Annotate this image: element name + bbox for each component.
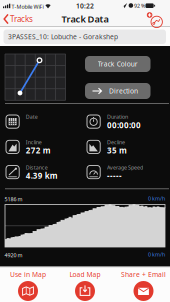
staticText: Direction (109, 87, 138, 95)
button[interactable]: Share + Email (116, 268, 170, 302)
staticText: 0 km/h (148, 195, 165, 202)
staticText: Track Colour (98, 60, 138, 68)
staticText: 35 m (107, 145, 127, 156)
staticText: Average Speed (107, 164, 143, 171)
staticText: Tracks (10, 14, 33, 24)
staticText: Load Map (69, 270, 100, 279)
staticText: 272 m (26, 145, 51, 156)
staticText: Share + Email (121, 270, 166, 279)
staticText: Track Data (61, 13, 108, 25)
staticText: 5186 m (4, 196, 22, 203)
staticText: 10:22 (76, 1, 94, 10)
staticText: Use in Map (10, 270, 46, 279)
button[interactable]: Load Map (58, 268, 112, 302)
button[interactable]: New Track (144, 11, 168, 28)
staticText: T-Mobile WiFi (11, 3, 43, 10)
staticText: Distance (26, 164, 48, 171)
button[interactable]: Tracks (0, 11, 38, 27)
staticText: Date (26, 113, 38, 120)
button[interactable]: 3PASSES_10: Lobuche - Gorakshep (3, 29, 166, 44)
staticText: ----- (107, 170, 122, 181)
staticText: 00:00:00 (107, 120, 141, 130)
staticText: 0 km/h (148, 251, 165, 258)
staticText: Incline (26, 139, 42, 146)
button[interactable]: Direction (85, 83, 150, 99)
staticText: Duration (107, 113, 128, 120)
button[interactable]: Track Colour (85, 56, 150, 72)
staticText: Decline (107, 139, 125, 146)
staticText: 4920 m (4, 252, 22, 259)
staticText: 3PASSES_10: Lobuche - Gorakshep (8, 32, 118, 41)
staticText: 92 % (134, 2, 145, 9)
button[interactable]: Use in Map (1, 268, 55, 302)
staticText: 4.39 km (26, 170, 58, 181)
